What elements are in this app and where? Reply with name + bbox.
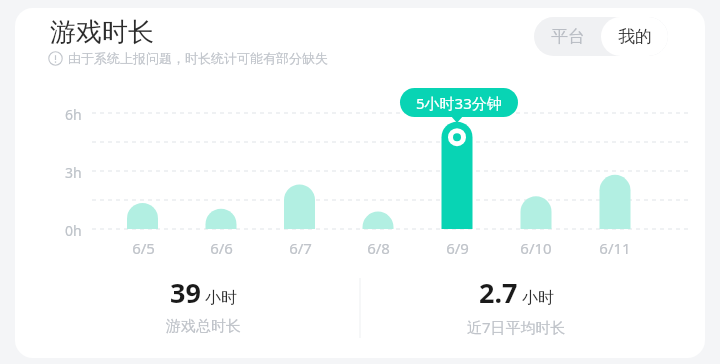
button[interactable]: 我的: [601, 17, 668, 56]
staticText: 游戏时长: [50, 16, 154, 49]
staticText: 小时: [522, 288, 554, 308]
staticText: 0h: [65, 221, 82, 239]
staticText: 6/9: [446, 238, 469, 258]
staticText: 39: [170, 274, 201, 311]
other: Warning: [48, 51, 63, 66]
staticText: 近7日平均时长: [467, 317, 566, 337]
staticText: 我的: [618, 26, 652, 47]
button[interactable]: 平台: [534, 17, 601, 56]
button[interactable]: 2.7: [406, 274, 626, 346]
staticText: 6/11: [599, 238, 631, 258]
staticText: 由于系统上报问题，时长统计可能有部分缺失: [68, 50, 328, 66]
staticText: 6/6: [210, 238, 233, 258]
staticText: 3h: [65, 163, 82, 181]
staticText: 6/10: [520, 238, 552, 258]
staticText: 2.7: [479, 274, 518, 311]
button[interactable]: 39: [93, 274, 313, 346]
staticText: 游戏总时长: [166, 317, 241, 336]
staticText: 6/7: [289, 238, 312, 258]
staticText: 小时: [205, 288, 237, 308]
staticText: 6h: [65, 105, 82, 123]
staticText: 平台: [551, 26, 585, 47]
staticText: 5小时33分钟: [416, 93, 502, 113]
staticText: 6/5: [132, 238, 155, 258]
staticText: 6/8: [367, 238, 390, 258]
